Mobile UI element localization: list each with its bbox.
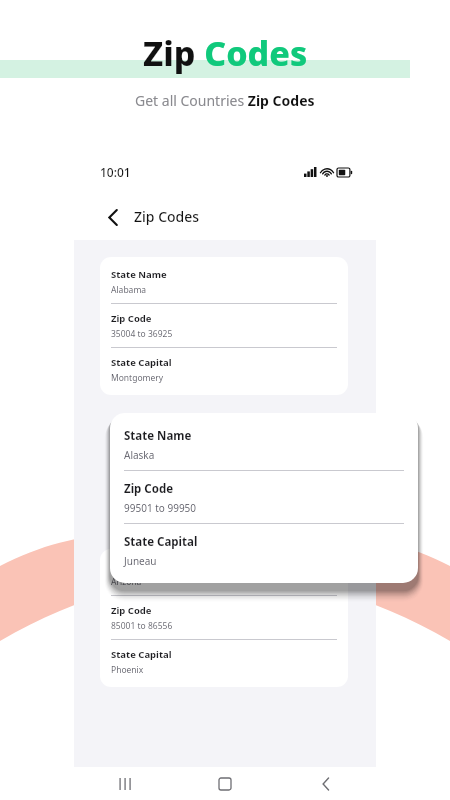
staticText: Arizona bbox=[111, 576, 142, 588]
staticText: Montgomery bbox=[111, 372, 164, 384]
staticText: State Capital bbox=[111, 648, 172, 661]
staticText: Zip Codes bbox=[143, 30, 308, 76]
staticText: State Name bbox=[111, 268, 167, 281]
staticText: Zip Code bbox=[124, 481, 174, 497]
button[interactable]: State Name bbox=[100, 549, 348, 687]
staticText: Alaska bbox=[124, 448, 155, 462]
staticText: 99501 to 99950 bbox=[124, 501, 197, 515]
staticText: State Name bbox=[124, 428, 192, 444]
button[interactable]: State Name bbox=[110, 413, 418, 583]
button[interactable]: State Name bbox=[100, 257, 348, 395]
staticText: State Capital bbox=[111, 356, 172, 369]
staticText: Alabama bbox=[111, 284, 147, 296]
button[interactable]: Back bbox=[275, 767, 376, 800]
staticText: State Capital bbox=[124, 534, 198, 550]
button[interactable]: Home bbox=[174, 767, 275, 800]
staticText: 10:01 bbox=[100, 164, 131, 180]
staticText: 35004 to 36925 bbox=[111, 328, 173, 340]
staticText: Get all Countries Zip Codes bbox=[135, 91, 315, 110]
staticText: Zip Code bbox=[111, 312, 152, 325]
staticText: Phoenix bbox=[111, 664, 144, 676]
staticText: State Name bbox=[111, 560, 167, 573]
button[interactable]: Back bbox=[100, 204, 126, 230]
staticText: Zip Code bbox=[111, 604, 152, 617]
staticText: Juneau bbox=[124, 554, 157, 568]
staticText: Zip Codes bbox=[134, 207, 200, 226]
button[interactable]: Recent apps bbox=[74, 767, 174, 800]
staticText: 85001 to 86556 bbox=[111, 620, 173, 632]
